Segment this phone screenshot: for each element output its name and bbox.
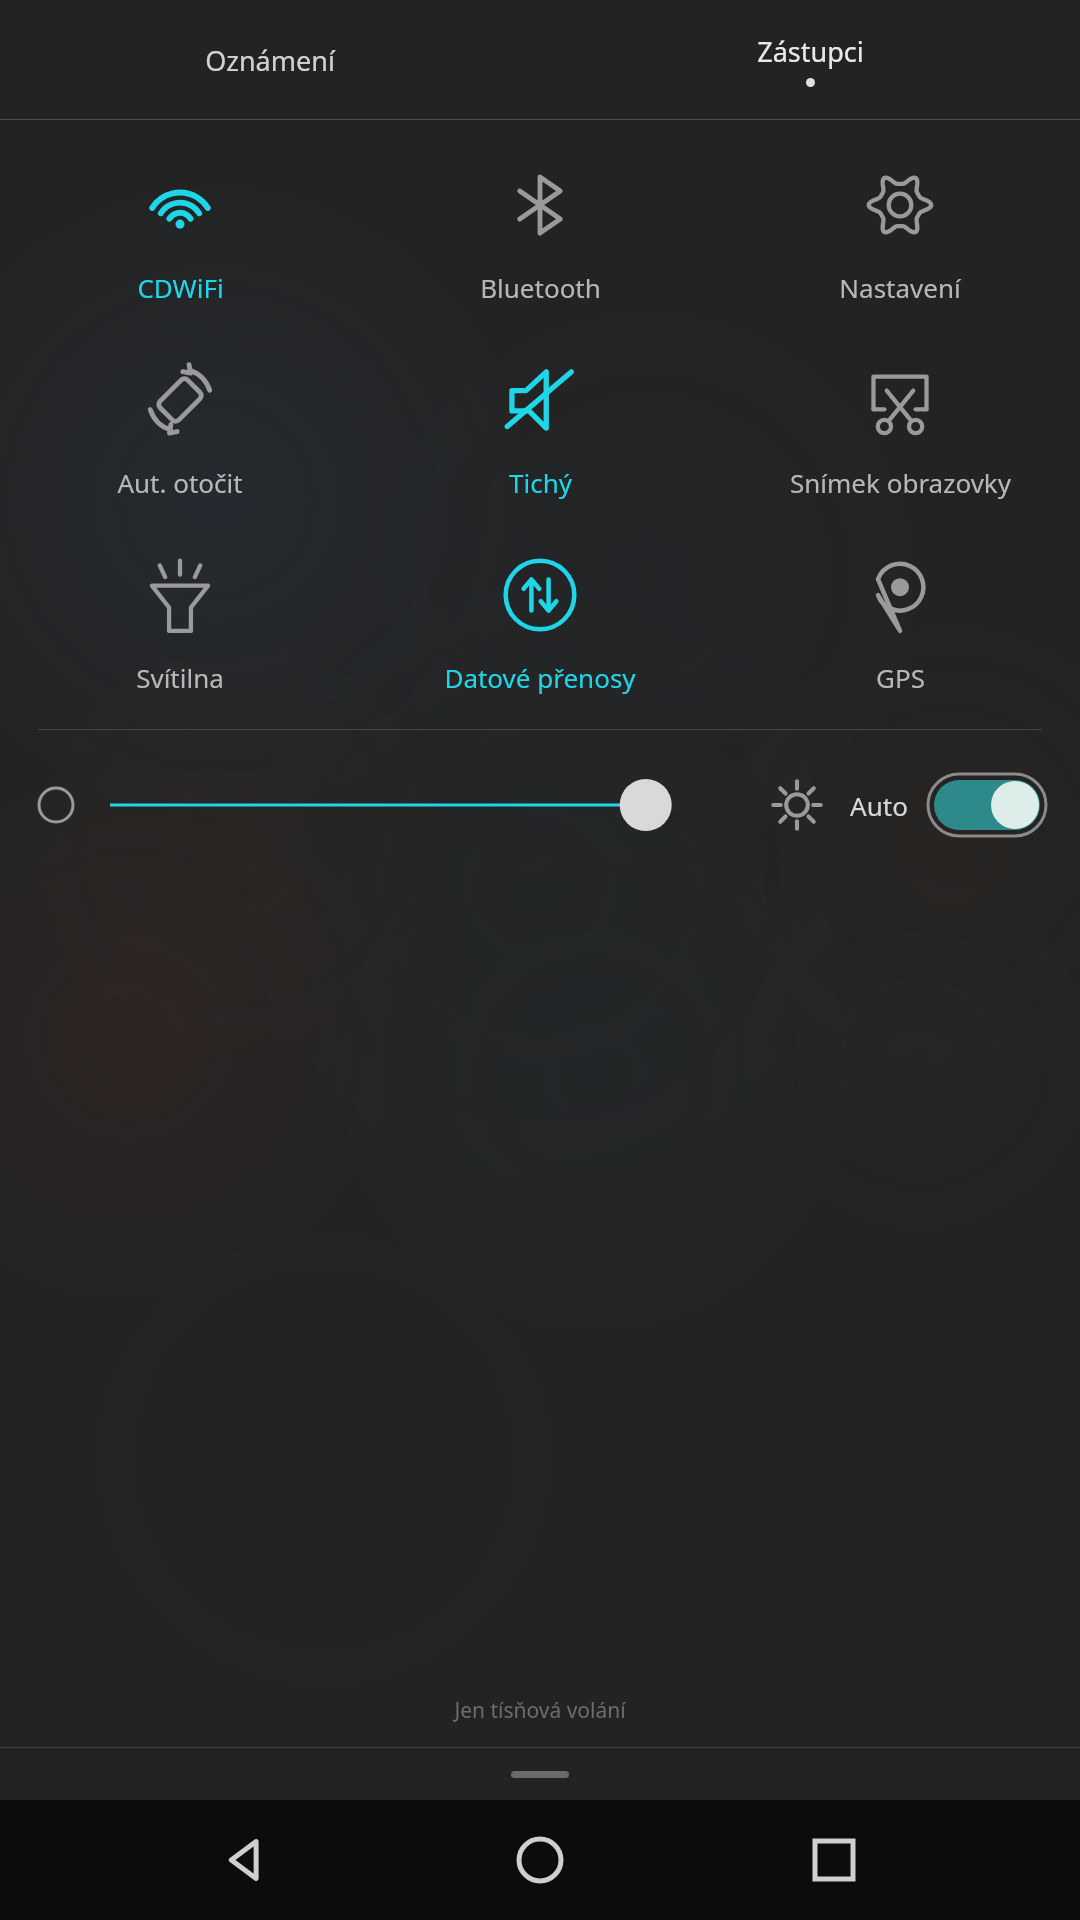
staticText: Snímek obrazovky (790, 465, 1011, 500)
staticText: Oznámení (205, 42, 335, 79)
button[interactable]: Automatický jas (928, 774, 1046, 836)
staticText: Tichý (509, 465, 572, 500)
staticText: Auto (850, 788, 908, 823)
other: Bluetooth (501, 166, 579, 244)
button[interactable]: Svítilna (0, 556, 360, 695)
staticText: Nastavení (839, 270, 961, 305)
staticText: Svítilna (136, 660, 224, 695)
other: Snímek obrazovky (861, 361, 939, 439)
button[interactable]: Maximum jasu (770, 778, 824, 832)
staticText: Zástupci (757, 33, 864, 70)
staticText: GPS (876, 660, 925, 695)
button[interactable]: Zástupci (540, 0, 1080, 120)
other: Svítilna (141, 556, 219, 634)
button[interactable]: Plocha (492, 1812, 588, 1908)
button[interactable]: Oznámení (0, 0, 540, 120)
staticText: Datové přenosy (444, 660, 636, 695)
button[interactable]: GPS (720, 556, 1080, 695)
other: Tichý (501, 361, 579, 439)
other: Datové přenosy (501, 556, 579, 634)
button[interactable]: Datové přenosy (360, 556, 720, 695)
button[interactable]: CDWiFi (0, 166, 360, 305)
button[interactable] (110, 777, 744, 833)
other: CDWiFi (141, 166, 219, 244)
button[interactable]: Aut. otočit (0, 361, 360, 500)
button[interactable]: Nastavení (720, 166, 1080, 305)
other: Nastavení (861, 166, 939, 244)
other: GPS (861, 556, 939, 634)
other: Aut. otočit (141, 361, 219, 439)
staticText: Bluetooth (480, 270, 601, 305)
button[interactable]: Poslední aplikace (786, 1812, 882, 1908)
button[interactable]: Bluetooth (360, 166, 720, 305)
button[interactable]: Minimum jasu (36, 785, 76, 825)
staticText: CDWiFi (137, 270, 224, 305)
button[interactable]: Tichý (360, 361, 720, 500)
staticText: Aut. otočit (117, 465, 243, 500)
staticText: Jen tísňová volání (454, 1696, 626, 1725)
button[interactable]: Snímek obrazovky (720, 361, 1080, 500)
button[interactable]: Zpět (198, 1812, 294, 1908)
